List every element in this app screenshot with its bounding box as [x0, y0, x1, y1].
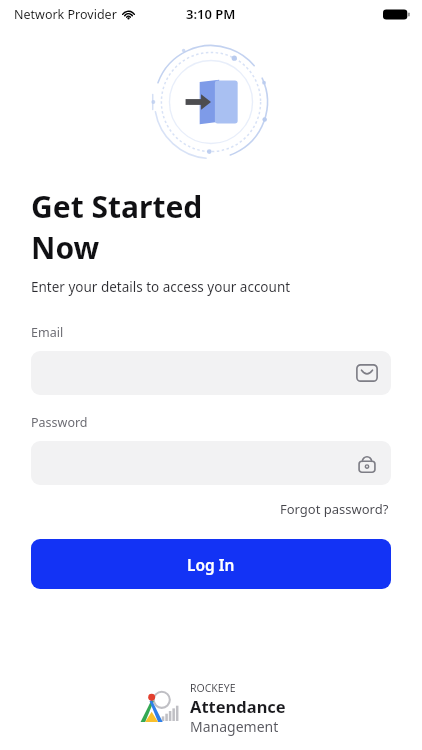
button[interactable]: Forgot password? — [278, 497, 391, 521]
staticText: Email — [31, 324, 64, 341]
staticText: Get Started — [31, 186, 203, 227]
button[interactable]: Log In — [31, 539, 391, 589]
staticText: Now — [31, 227, 100, 268]
button[interactable]: Password — [31, 441, 391, 485]
staticText: Enter your details to access your accoun… — [31, 278, 291, 296]
staticText: Log In — [187, 554, 235, 575]
other: Email — [356, 362, 378, 384]
staticText: Attendance — [190, 695, 286, 717]
staticText: ROCKEYE — [190, 681, 236, 695]
button[interactable]: Email — [31, 351, 391, 395]
staticText: 3:10 PM — [186, 5, 236, 23]
staticText: Network Provider — [14, 6, 117, 23]
other: Password — [356, 452, 378, 474]
staticText: Password — [31, 414, 88, 431]
staticText: Management — [190, 717, 279, 736]
staticText: Forgot password? — [280, 500, 389, 518]
